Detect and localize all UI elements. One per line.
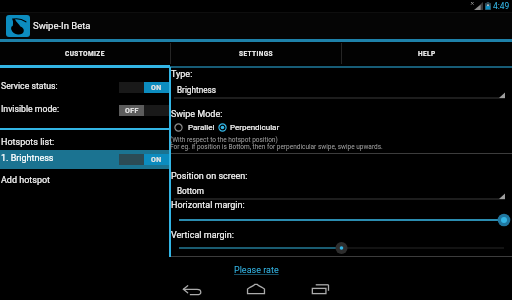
staticText: 4:49 xyxy=(493,1,510,11)
staticText: ON xyxy=(151,156,162,164)
staticText: For eg. if position is Bottom, then for … xyxy=(170,143,383,151)
staticText: Horizontal margin: xyxy=(171,200,245,211)
staticText: Brightness xyxy=(177,85,216,95)
staticText: ON xyxy=(151,84,162,92)
staticText: (With respect to the hotspot position) xyxy=(170,136,278,144)
button[interactable]: Switch, off xyxy=(119,105,169,116)
button[interactable]: Dropdown, Bottom xyxy=(172,183,510,202)
button[interactable]: Back xyxy=(166,278,218,300)
staticText: SETTINGS xyxy=(239,50,273,58)
staticText: Vertical margin: xyxy=(171,230,234,241)
button[interactable]: CUSTOMIZE xyxy=(0,42,170,65)
button[interactable]: Recent apps xyxy=(294,278,346,300)
button[interactable]: Parallel xyxy=(174,121,216,134)
staticText: Perpendicular xyxy=(230,123,280,132)
button[interactable]: Service status: xyxy=(0,79,169,97)
staticText: Position on screen: xyxy=(171,171,248,182)
button[interactable]: Invisible mode: xyxy=(0,102,169,120)
staticText: HELP xyxy=(418,50,436,58)
staticText: Hotspots list: xyxy=(1,137,55,148)
staticText: Swipe-In Beta xyxy=(33,20,91,31)
button[interactable]: SETTINGS xyxy=(171,42,341,65)
staticText: CUSTOMIZE xyxy=(65,50,105,58)
button[interactable]: Please rate xyxy=(234,265,279,276)
button[interactable]: Add hotspot xyxy=(1,175,51,186)
button[interactable]: Perpendicular xyxy=(218,121,280,134)
button[interactable]: Slider xyxy=(170,212,512,228)
button[interactable]: Slider xyxy=(170,240,512,256)
staticText: OFF xyxy=(125,107,139,115)
staticText: 1. Brightness xyxy=(1,153,54,164)
staticText: Parallel xyxy=(188,123,215,132)
button[interactable]: Switch, on xyxy=(119,82,169,93)
staticText: Invisible mode: xyxy=(1,104,60,114)
button[interactable]: 1. Brightness xyxy=(0,150,169,169)
staticText: Bottom xyxy=(177,186,204,196)
staticText: Service status: xyxy=(1,81,58,91)
staticText: Swipe Mode: xyxy=(171,109,223,120)
button[interactable]: App icon xyxy=(6,15,30,37)
staticText: Type: xyxy=(171,69,193,80)
button[interactable]: Home xyxy=(230,278,282,300)
button[interactable]: HELP xyxy=(342,42,512,65)
button[interactable]: Switch, on xyxy=(119,154,169,165)
button[interactable]: Dropdown, Brightness xyxy=(172,82,510,101)
